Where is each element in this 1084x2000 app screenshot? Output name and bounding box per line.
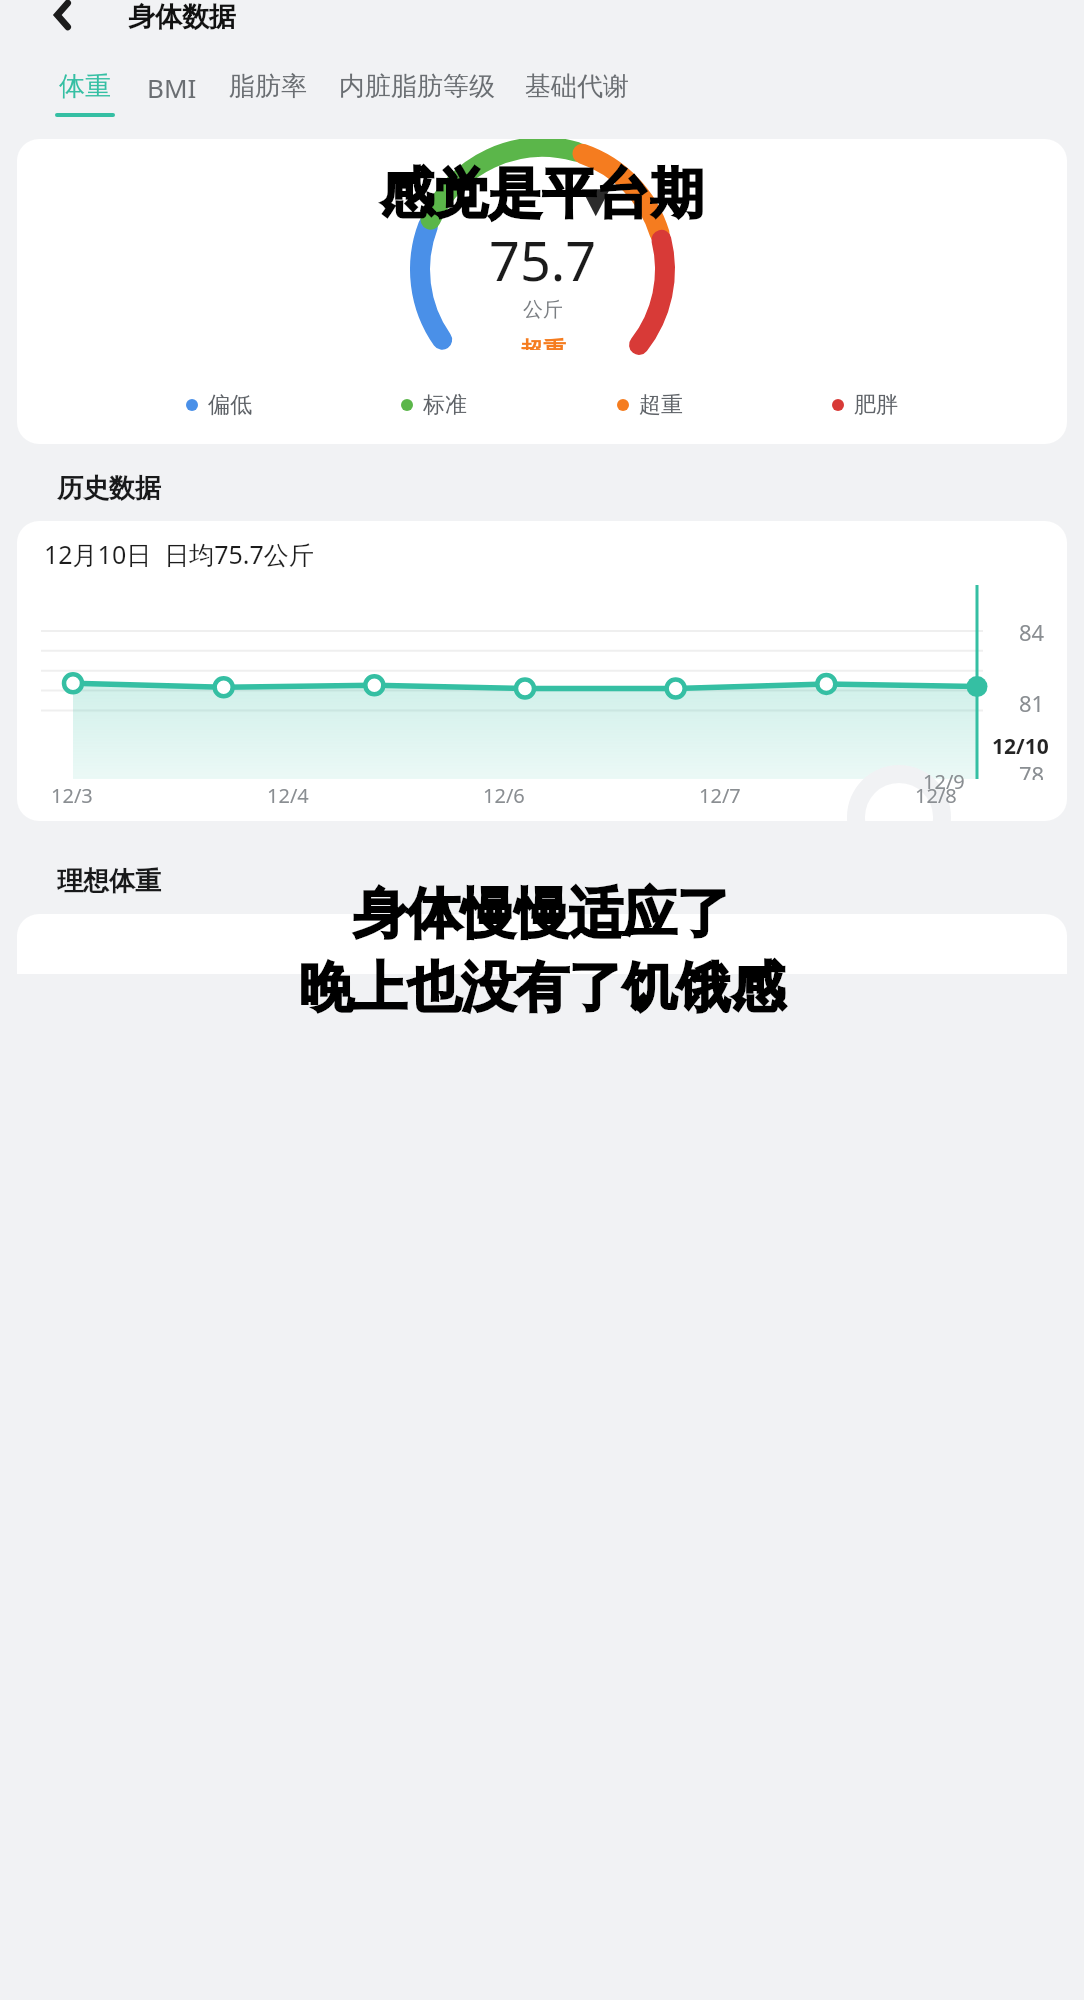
button[interactable]: 偏低: [186, 391, 252, 419]
staticText: 理想体重: [57, 865, 161, 898]
staticText: 12/4: [267, 782, 309, 809]
button[interactable]: 75.7: [17, 139, 1067, 444]
staticText: 偏低: [208, 391, 252, 419]
staticText: 超重: [520, 336, 566, 350]
staticText: 标准: [423, 391, 467, 419]
button[interactable]: 超重: [617, 391, 683, 419]
button[interactable]: 体重: [55, 70, 115, 117]
staticText: 晚上也没有了饥饿感: [299, 954, 785, 1022]
staticText: BMI: [147, 70, 197, 105]
staticText: 超重: [639, 391, 683, 419]
button[interactable]: [17, 914, 1067, 974]
staticText: 脂肪率: [229, 70, 307, 103]
staticText: 84: [1019, 617, 1045, 647]
staticText: 12/3: [51, 782, 93, 809]
staticText: 体重: [59, 70, 111, 103]
staticText: 12/7: [699, 782, 741, 809]
staticText: 75.7: [489, 223, 597, 297]
button[interactable]: 肥胖: [832, 391, 898, 419]
staticText: 81: [1019, 688, 1045, 718]
button[interactable]: 脂肪率: [229, 70, 307, 113]
staticText: 基础代谢: [525, 70, 629, 103]
staticText: 12/9: [923, 768, 965, 795]
staticText: 公斤: [523, 297, 563, 322]
button[interactable]: 基础代谢: [525, 70, 629, 113]
staticText: 12/8: [915, 782, 957, 809]
button[interactable]: 内脏脂肪等级: [339, 70, 495, 113]
staticText: 肥胖: [854, 391, 898, 419]
button[interactable]: 标准: [401, 391, 467, 419]
staticText: 12月10日 日均75.7公斤: [44, 537, 314, 571]
staticText: 身体慢慢适应了: [353, 880, 731, 948]
button[interactable]: Back: [40, 0, 86, 30]
button[interactable]: BMI: [147, 70, 197, 115]
staticText: 身体数据: [128, 0, 236, 30]
staticText: 内脏脂肪等级: [339, 70, 495, 103]
staticText: 12/6: [483, 782, 525, 809]
staticText: 12/10: [992, 732, 1049, 761]
staticText: 78: [1019, 759, 1045, 780]
staticText: 感觉是平台期: [380, 160, 704, 228]
staticText: 历史数据: [57, 472, 161, 505]
button[interactable]: 12月10日 日均75.7公斤: [17, 521, 1067, 821]
